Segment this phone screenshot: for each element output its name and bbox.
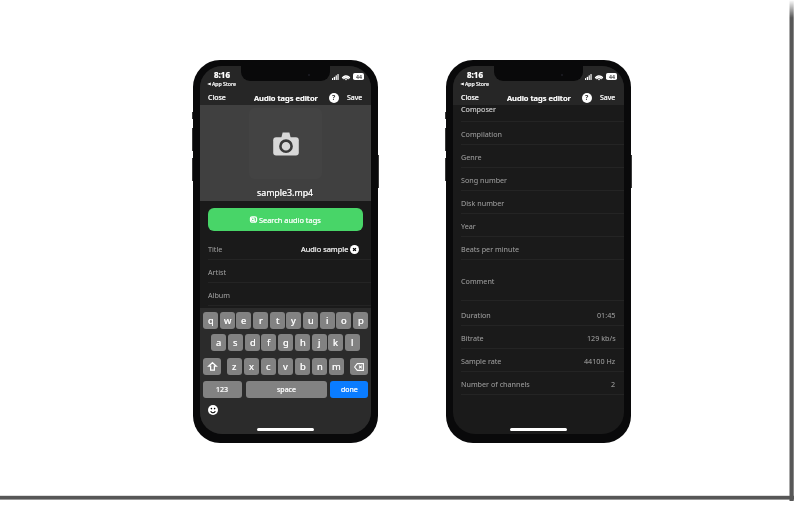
staticText: q: [208, 314, 214, 327]
staticText: Composer: [461, 104, 496, 114]
staticText: Song number: [461, 175, 508, 185]
button[interactable]: a: [211, 334, 226, 351]
staticText: z: [232, 360, 237, 373]
staticText: a: [216, 336, 222, 349]
staticText: p: [358, 314, 364, 327]
button[interactable]: Emoji: [208, 405, 218, 415]
staticText: m: [332, 360, 341, 373]
button[interactable]: Close: [205, 90, 229, 106]
staticText: 44: [609, 73, 615, 80]
button[interactable]: Composer: [453, 105, 624, 122]
button[interactable]: k: [328, 334, 343, 351]
staticText: s: [233, 336, 238, 349]
staticText: Sample rate: [461, 356, 502, 366]
button[interactable]: Year: [453, 214, 624, 237]
button[interactable]: b: [295, 358, 310, 375]
button[interactable]: i: [320, 312, 335, 329]
staticText: w: [224, 314, 232, 327]
staticText: sample3.mp4: [257, 187, 314, 199]
staticText: e: [241, 314, 247, 327]
staticText: g: [283, 336, 289, 349]
button[interactable]: Help: [582, 93, 592, 103]
button[interactable]: Beats per minute: [453, 237, 624, 260]
staticText: d: [250, 336, 256, 349]
button[interactable]: 123: [203, 381, 242, 398]
button[interactable]: w: [220, 312, 235, 329]
button[interactable]: t: [270, 312, 285, 329]
staticText: Comment: [461, 276, 495, 286]
staticText: Audio sample: [301, 244, 349, 254]
staticText: done: [341, 385, 358, 395]
button[interactable]: Genre: [453, 145, 624, 168]
button[interactable]: n: [312, 358, 327, 375]
button[interactable]: Comment: [453, 269, 624, 301]
button[interactable]: Compilation: [453, 122, 624, 145]
button[interactable]: s: [228, 334, 243, 351]
staticText: Beats per minute: [461, 244, 520, 254]
staticText: ?: [585, 93, 589, 103]
staticText: Duration: [461, 310, 491, 320]
button[interactable]: h: [295, 334, 310, 351]
button[interactable]: Song number: [453, 168, 624, 191]
button[interactable]: Close: [458, 90, 482, 106]
staticText: Year: [461, 221, 476, 231]
staticText: t: [276, 314, 280, 327]
staticText: Bitrate: [461, 333, 484, 343]
button[interactable]: g: [278, 334, 293, 351]
staticText: Album: [208, 290, 231, 300]
button[interactable]: Disk number: [453, 191, 624, 214]
staticText: v: [283, 360, 288, 373]
button[interactable]: Search audio tags: [208, 208, 363, 231]
staticText: u: [308, 314, 314, 327]
button[interactable]: z: [227, 358, 242, 375]
staticText: Genre: [461, 152, 482, 162]
button[interactable]: Help: [329, 93, 339, 103]
button[interactable]: y: [286, 312, 301, 329]
staticText: b: [300, 360, 306, 373]
staticText: 44: [356, 73, 362, 80]
staticText: 8:16: [467, 69, 483, 80]
staticText: App Store: [212, 80, 236, 87]
staticText: 8:16: [214, 69, 230, 80]
button[interactable]: space: [246, 381, 327, 398]
staticText: Number of channels: [461, 379, 530, 389]
button[interactable]: x: [244, 358, 259, 375]
button[interactable]: Save: [345, 90, 365, 106]
staticText: Title: [208, 244, 223, 254]
button[interactable]: Shift: [203, 358, 221, 375]
button[interactable]: done: [330, 381, 368, 398]
staticText: space: [277, 385, 296, 395]
staticText: Compilation: [461, 129, 503, 139]
staticText: j: [318, 336, 321, 349]
staticText: o: [341, 314, 347, 327]
button[interactable]: e: [236, 312, 251, 329]
button[interactable]: m: [329, 358, 344, 375]
staticText: Artist: [208, 267, 227, 277]
button[interactable]: Backspace: [350, 358, 368, 375]
button[interactable]: f: [261, 334, 276, 351]
button[interactable]: p: [353, 312, 368, 329]
button[interactable]: v: [278, 358, 293, 375]
staticText: 44100 Hz: [584, 356, 616, 366]
staticText: r: [259, 314, 263, 327]
staticText: 01:45: [597, 310, 616, 320]
button[interactable]: Clear: [350, 245, 359, 254]
button[interactable]: q: [203, 312, 218, 329]
staticText: Search audio tags: [259, 215, 321, 225]
button[interactable]: Artist: [200, 260, 371, 283]
staticText: x: [249, 360, 254, 373]
button[interactable]: d: [245, 334, 260, 351]
button[interactable]: o: [336, 312, 351, 329]
button[interactable]: Title: [200, 237, 371, 260]
button[interactable]: Album: [200, 283, 371, 306]
button[interactable]: j: [312, 334, 327, 351]
staticText: App Store: [465, 80, 489, 87]
button[interactable]: l: [345, 334, 360, 351]
staticText: 129 kb/s: [587, 333, 616, 343]
button[interactable]: u: [303, 312, 318, 329]
staticText: h: [300, 336, 306, 349]
button[interactable]: r: [253, 312, 268, 329]
button[interactable]: c: [261, 358, 276, 375]
staticText: k: [333, 336, 339, 349]
button[interactable]: Save: [598, 90, 618, 106]
